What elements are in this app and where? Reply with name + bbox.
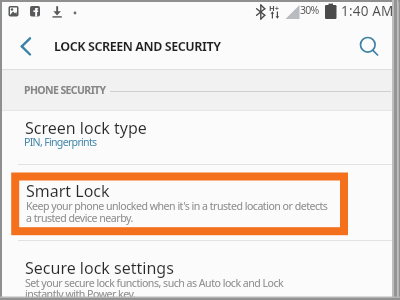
staticText: H+ — [269, 3, 280, 13]
staticText: PHONE SECURITY — [24, 83, 106, 97]
staticText: Screen lock type — [25, 117, 147, 139]
staticText: LOCK SCREEN AND SECURITY — [54, 38, 221, 55]
staticText: PIN, Fingerprints — [24, 135, 97, 149]
staticText: 1:40 AM — [341, 2, 394, 20]
button[interactable] — [352, 28, 386, 64]
button[interactable] — [0, 165, 392, 240]
staticText: Set your secure lock functions, such as … — [25, 276, 284, 290]
staticText: Secure lock settings — [25, 257, 174, 279]
staticText: Keep your phone unlocked when it's in a … — [26, 199, 328, 213]
staticText: 30% — [300, 3, 319, 17]
button[interactable] — [0, 241, 392, 296]
staticText: a trusted device nearby. — [26, 211, 133, 225]
staticText: Smart Lock — [26, 180, 110, 202]
button[interactable] — [6, 28, 44, 64]
staticText: instantly with Power key. — [25, 287, 136, 300]
button[interactable] — [0, 111, 392, 164]
